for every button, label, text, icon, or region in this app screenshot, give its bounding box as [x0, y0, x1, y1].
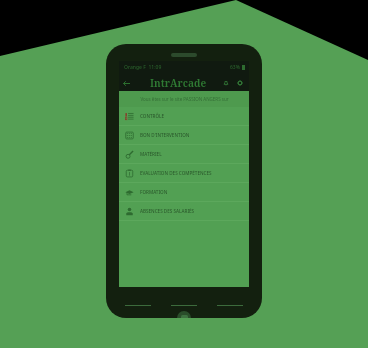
staticText: EVALUATION DES COMPÉTENCES [140, 170, 212, 176]
button[interactable]: CONTRÔLE [119, 107, 249, 126]
staticText: Orange F 11:09 [124, 64, 162, 71]
staticText: IntrArcade [150, 76, 207, 90]
button[interactable]: FORMATION [119, 183, 249, 202]
staticText: 63% [230, 64, 240, 71]
staticText: Vous êtes sur le site PASSION ANGERS sur [140, 96, 229, 102]
button[interactable]: Home [177, 311, 191, 318]
staticText: ABSENCES DES SALARIÉS [140, 208, 195, 214]
button[interactable]: Settings [234, 77, 246, 89]
button[interactable]: Back [119, 76, 133, 90]
button[interactable]: Notifications [220, 77, 232, 89]
button[interactable]: ABSENCES DES SALARIÉS [119, 202, 249, 221]
button[interactable]: EVALUATION DES COMPÉTENCES [119, 164, 249, 183]
staticText: MATÉRIEL [140, 151, 162, 157]
staticText: BON D'INTERVENTION [140, 132, 190, 138]
staticText: FORMATION [140, 189, 168, 195]
button[interactable]: MATÉRIEL [119, 145, 249, 164]
staticText: CONTRÔLE [140, 113, 165, 119]
button[interactable]: BON D'INTERVENTION [119, 126, 249, 145]
